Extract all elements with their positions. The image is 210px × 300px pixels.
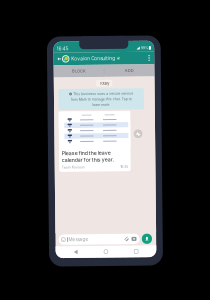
staticText: calendar for this year. <box>62 156 114 163</box>
staticText: Message <box>67 236 87 242</box>
button[interactable]: Message <box>58 234 139 244</box>
staticText: learn more. <box>93 102 111 107</box>
staticText: Today <box>100 81 110 86</box>
staticText: from Meta to manage this chat. Tap to <box>71 97 132 101</box>
staticText: Kovaion Consulting <box>72 56 116 61</box>
button[interactable]: Back <box>58 52 63 65</box>
button[interactable]: Back <box>65 246 85 258</box>
staticText: 16:45 <box>120 165 128 169</box>
staticText: 99% <box>142 46 149 50</box>
button[interactable]: More options <box>147 52 153 65</box>
button[interactable]: Forward <box>134 130 142 138</box>
button[interactable]: This business uses a secure service <box>59 88 144 110</box>
button[interactable]: BLOCK <box>54 65 105 77</box>
staticText: ADD <box>126 68 135 73</box>
staticText: BLOCK <box>73 68 87 73</box>
staticText: 16:45 <box>58 46 70 51</box>
button[interactable]: Home <box>95 246 115 258</box>
button[interactable]: ADD <box>105 65 155 77</box>
staticText: This business uses a secure service <box>74 91 134 96</box>
staticText: Please find the leave <box>62 150 111 156</box>
staticText: Team Kovaion <box>62 165 85 169</box>
button[interactable]: Recent apps <box>125 246 145 258</box>
button[interactable]: Record voice message <box>141 234 151 244</box>
